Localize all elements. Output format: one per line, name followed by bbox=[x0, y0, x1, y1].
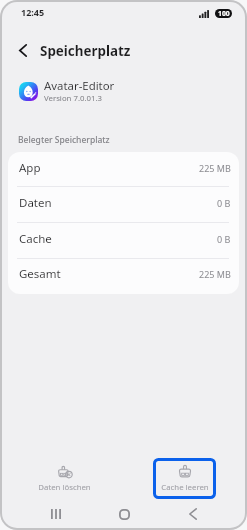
staticText: 12:45 bbox=[21, 6, 45, 18]
button[interactable]: Home bbox=[108, 502, 140, 526]
button[interactable]: Recent apps bbox=[40, 502, 72, 526]
button[interactable]: App bbox=[8, 152, 239, 187]
staticText: Version 7.0.01.3 bbox=[44, 93, 103, 104]
button[interactable]: Cache bbox=[8, 223, 239, 259]
staticText: Speicherplatz bbox=[40, 42, 131, 60]
staticText: Daten bbox=[19, 195, 52, 211]
button[interactable]: Back bbox=[11, 38, 35, 62]
staticText: 225 MB bbox=[199, 268, 231, 280]
button[interactable]: Daten bbox=[8, 187, 239, 223]
staticText: 0 B bbox=[217, 233, 231, 245]
staticText: Cache leeren bbox=[161, 482, 209, 493]
button[interactable]: Daten löschen bbox=[31, 458, 97, 499]
staticText: Daten löschen bbox=[38, 482, 91, 493]
button[interactable]: Gesamt bbox=[8, 259, 239, 294]
staticText: Avatar-Editor bbox=[44, 78, 115, 94]
staticText: 100 bbox=[218, 9, 230, 18]
staticText: Gesamt bbox=[19, 266, 61, 282]
staticText: App bbox=[19, 160, 41, 176]
staticText: Belegter Speicherplatz bbox=[18, 134, 110, 146]
button[interactable]: Back bbox=[177, 502, 209, 526]
staticText: 225 MB bbox=[199, 162, 231, 174]
staticText: Cache bbox=[19, 231, 52, 247]
staticText: 0 B bbox=[217, 197, 231, 209]
button[interactable]: Cache leeren bbox=[153, 458, 216, 499]
